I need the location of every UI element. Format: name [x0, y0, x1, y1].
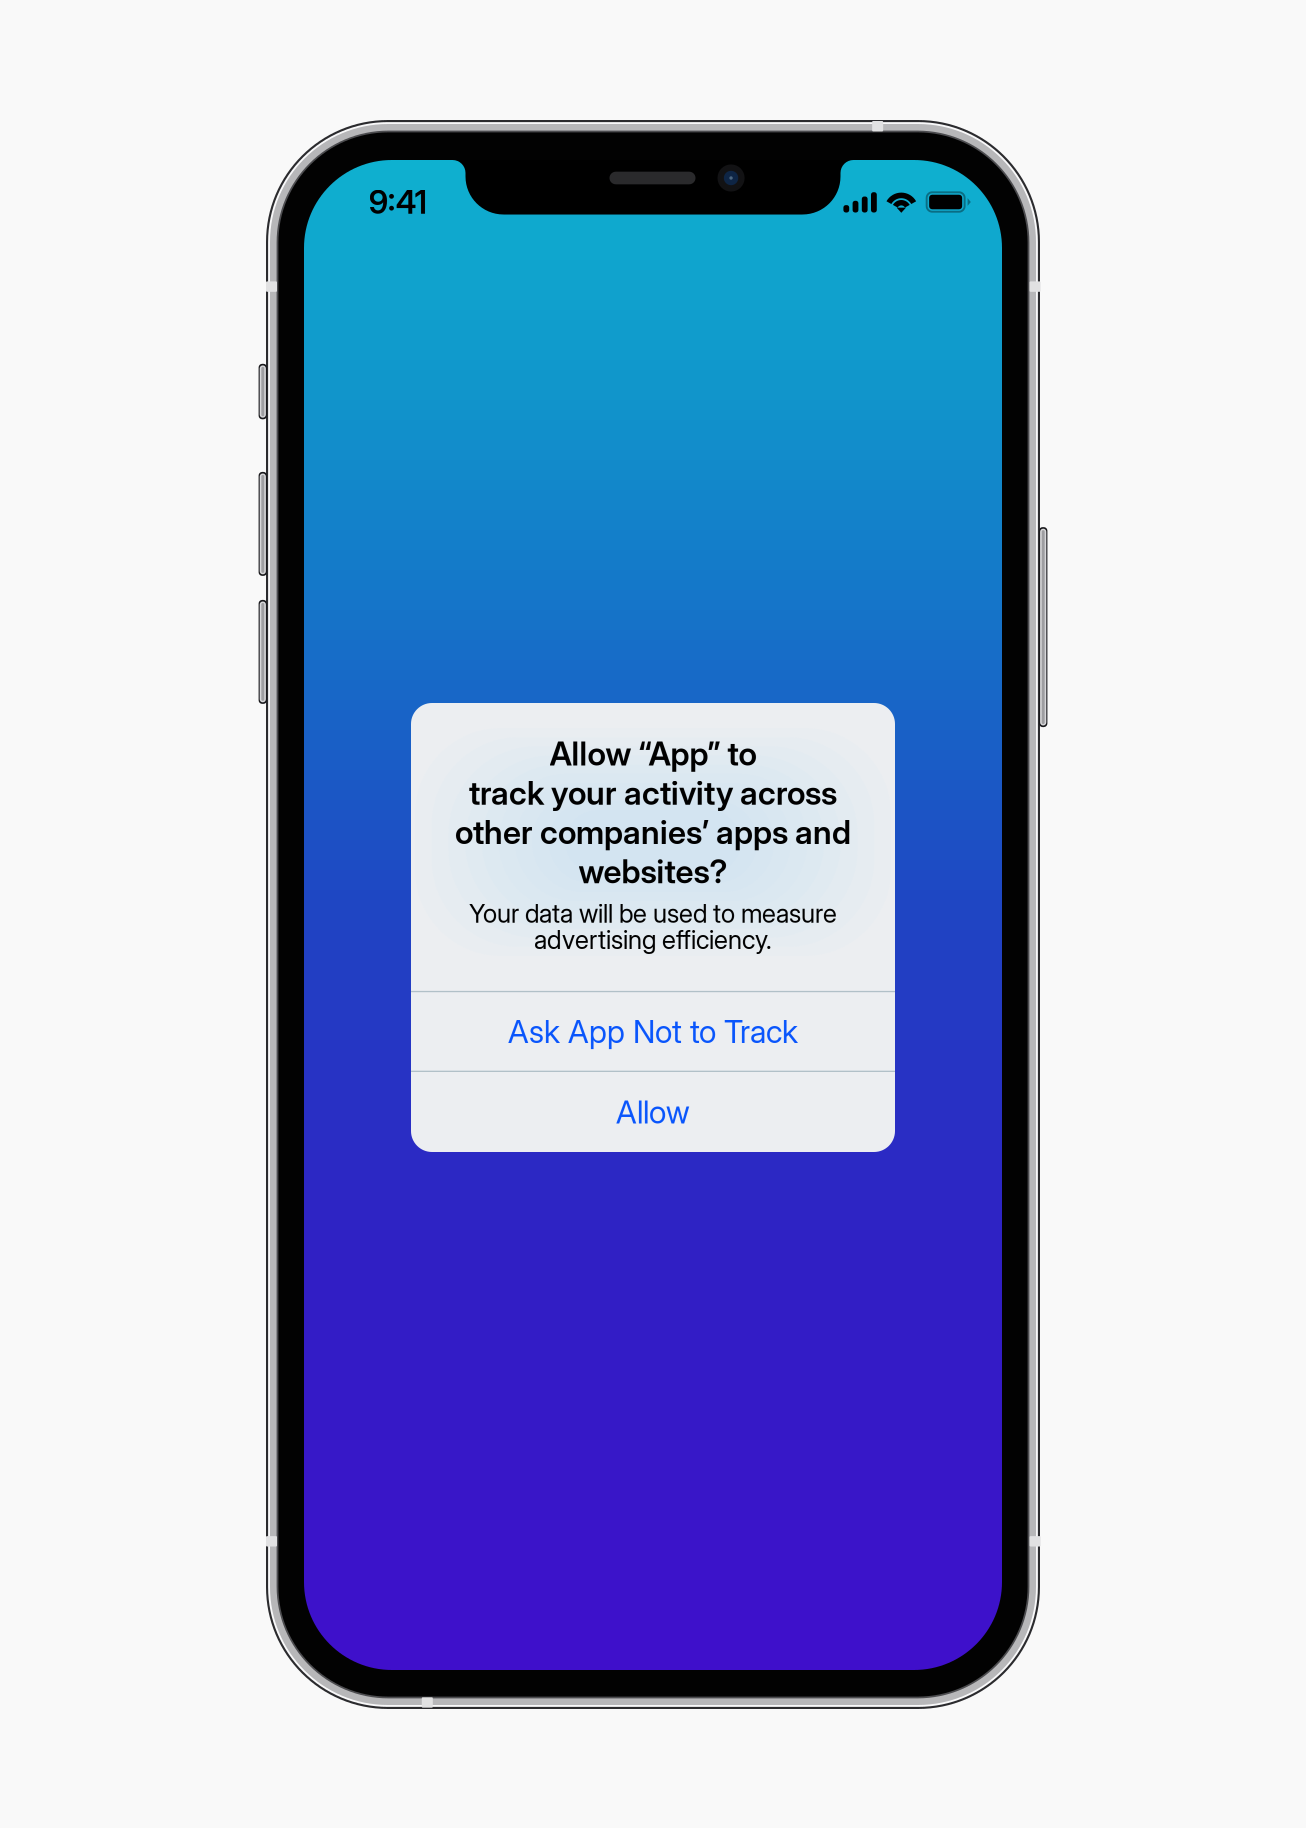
staticText: track your activity across [469, 773, 837, 812]
staticText: websites? [578, 852, 727, 891]
staticText: Allow [616, 1093, 690, 1131]
staticText: Your data will be used to measure [469, 898, 837, 929]
button[interactable]: Allow [411, 1072, 895, 1152]
staticText: advertising efficiency. [534, 924, 772, 955]
staticText: 9:41 [369, 183, 427, 221]
staticText: other companies’ apps and [455, 813, 851, 852]
button[interactable]: Ask App Not to Track [411, 992, 895, 1071]
staticText: Allow “App” to [549, 734, 756, 773]
staticText: Ask App Not to Track [508, 1012, 798, 1050]
